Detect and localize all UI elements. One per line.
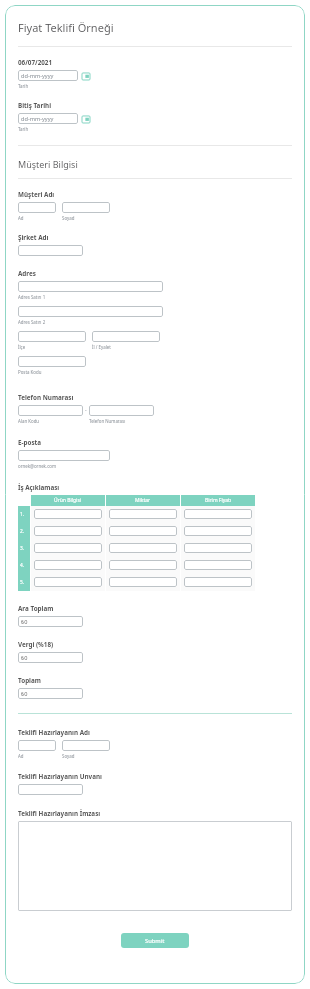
staticText: Adres Satırı 1	[18, 294, 46, 300]
staticText: Adres	[18, 269, 36, 278]
button[interactable]	[34, 577, 102, 587]
staticText: Vergi (%18)	[18, 640, 54, 649]
button[interactable]	[18, 450, 110, 461]
button[interactable]	[34, 560, 102, 570]
button[interactable]	[62, 202, 110, 213]
staticText: -	[85, 407, 87, 414]
staticText: Ad	[18, 753, 24, 759]
staticText: dd-mm-yyyy	[21, 72, 54, 80]
staticText: Tarih	[18, 126, 29, 132]
staticText: Submit	[145, 937, 165, 945]
staticText: Teklifi Hazırlayanın Adı	[18, 728, 90, 737]
staticText: İş Açıklaması	[18, 483, 60, 492]
button[interactable]	[18, 784, 83, 795]
staticText: Birim Fiyatı	[205, 497, 232, 504]
button[interactable]	[18, 405, 83, 416]
staticText: İlçe	[18, 344, 26, 350]
button[interactable]	[184, 560, 252, 570]
staticText: Posta Kodu	[18, 369, 42, 375]
staticText: Fiyat Teklifi Örneği	[18, 20, 114, 35]
button[interactable]	[18, 331, 86, 342]
staticText: Adres Satırı 2	[18, 319, 46, 325]
staticText: Bitiş Tarihi	[18, 101, 52, 110]
staticText: İl / Eyalet	[92, 344, 111, 350]
button[interactable]	[109, 543, 177, 553]
button[interactable]	[34, 509, 102, 519]
staticText: ₺0	[21, 654, 28, 662]
button[interactable]	[184, 509, 252, 519]
staticText: Alan Kodu	[18, 418, 40, 424]
staticText: Miktar	[135, 497, 151, 504]
staticText: 4.	[20, 562, 25, 569]
button[interactable]: ₺0	[18, 652, 83, 663]
button[interactable]: ₺0	[18, 688, 83, 699]
staticText: 3.	[20, 545, 25, 552]
staticText: Soyad	[62, 753, 75, 759]
button[interactable]: dd-mm-yyyy	[18, 113, 78, 124]
button[interactable]	[89, 405, 154, 416]
button[interactable]: ₺0	[18, 616, 83, 627]
staticText: 2.	[20, 528, 25, 535]
staticText: ₺0	[21, 618, 28, 626]
button[interactable]	[18, 202, 56, 213]
staticText: Teklifi Hazırlayanın İmzası	[18, 809, 101, 818]
button[interactable]: dd-mm-yyyy	[18, 70, 78, 81]
staticText: dd-mm-yyyy	[21, 115, 54, 123]
staticText: Ürün Bilgisi	[54, 497, 82, 504]
button[interactable]	[18, 281, 163, 292]
staticText: Şirket Adı	[18, 233, 49, 242]
staticText: Toplam	[18, 676, 41, 685]
button[interactable]	[109, 526, 177, 536]
button[interactable]	[109, 577, 177, 587]
staticText: Telefon Numarası	[89, 418, 126, 424]
button[interactable]: Submit	[121, 933, 189, 948]
staticText: Telefon Numarası	[18, 393, 74, 402]
staticText: 5.	[20, 579, 25, 586]
staticText: Müşteri Bilgisi	[18, 158, 78, 170]
button[interactable]	[62, 740, 110, 751]
button[interactable]	[18, 356, 86, 367]
button[interactable]	[184, 577, 252, 587]
staticText: E-posta	[18, 438, 42, 447]
button[interactable]	[34, 526, 102, 536]
button[interactable]	[18, 821, 292, 911]
staticText: Tarih	[18, 83, 29, 89]
button[interactable]	[18, 306, 163, 317]
staticText: 1.	[20, 511, 25, 518]
staticText: Soyad	[62, 215, 75, 221]
staticText: 06/07/2021	[18, 58, 53, 67]
button[interactable]	[109, 509, 177, 519]
staticText: Müşteri Adı	[18, 190, 55, 199]
button[interactable]	[92, 331, 160, 342]
button[interactable]	[18, 740, 56, 751]
staticText: ornek@ornek.com	[18, 463, 57, 469]
button[interactable]	[34, 543, 102, 553]
staticText: ₺0	[21, 690, 28, 698]
button[interactable]	[109, 560, 177, 570]
staticText: Teklifi Hazırlayanın Unvanı	[18, 772, 102, 781]
button[interactable]	[18, 245, 83, 256]
staticText: Ad	[18, 215, 24, 221]
button[interactable]	[184, 543, 252, 553]
button[interactable]: Takvim	[82, 115, 90, 123]
button[interactable]	[184, 526, 252, 536]
staticText: Ara Toplam	[18, 604, 54, 613]
button[interactable]: Takvim	[82, 72, 90, 80]
